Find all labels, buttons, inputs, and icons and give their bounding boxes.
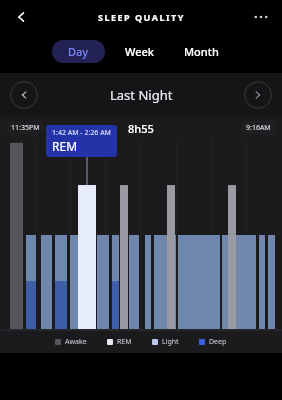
staticText: 1:42 AM - 2:26 AM <box>52 128 111 138</box>
button[interactable]: Back <box>8 4 34 30</box>
staticText: 9:16AM <box>246 123 271 133</box>
button[interactable]: Awake <box>53 334 89 350</box>
staticText: REM <box>117 337 132 347</box>
button[interactable]: More options <box>248 4 274 30</box>
button[interactable]: Month <box>172 40 231 63</box>
button[interactable]: Week <box>113 40 166 63</box>
staticText: Week <box>125 44 154 59</box>
button[interactable]: Deep <box>197 334 229 350</box>
button[interactable]: Previous night <box>10 81 38 109</box>
button[interactable]: 1:42 AM - 2:26 AM <box>46 125 117 157</box>
staticText: REM <box>52 138 78 154</box>
staticText: SLEEP QUALITY <box>98 11 185 23</box>
staticText: Last Night <box>110 86 173 104</box>
button[interactable]: Day <box>52 40 105 63</box>
staticText: Light <box>162 337 179 347</box>
button[interactable]: Next night <box>244 81 272 109</box>
staticText: Deep <box>209 337 227 347</box>
staticText: Month <box>184 44 219 59</box>
staticText: Day <box>68 44 89 59</box>
button[interactable]: Light <box>150 334 181 350</box>
staticText: 11:35PM <box>11 123 40 133</box>
staticText: Awake <box>65 337 87 347</box>
button[interactable]: REM <box>105 334 134 350</box>
staticText: 8h55 <box>128 121 154 136</box>
